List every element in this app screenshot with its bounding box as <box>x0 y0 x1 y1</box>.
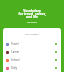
staticText: Travel <box>11 42 19 46</box>
button[interactable]: Career <box>3 48 61 56</box>
staticText: Daily <box>11 66 18 70</box>
staticText: Get started <box>0 21 64 24</box>
staticText: Career <box>11 50 20 54</box>
button[interactable]: Daily <box>3 64 61 72</box>
button[interactable]: Travel <box>3 40 61 48</box>
staticText: School <box>11 58 20 62</box>
button[interactable]: School <box>3 56 61 64</box>
staticText: Pick a category <box>3 33 61 36</box>
staticText: Vocabulary for travel, career, and life <box>0 9 64 19</box>
